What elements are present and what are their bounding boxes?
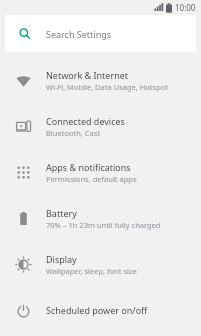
staticText: Apps & notifications bbox=[46, 161, 131, 173]
staticText: Connected devices bbox=[46, 115, 125, 127]
staticText: Display bbox=[46, 253, 77, 265]
button[interactable]: Scheduled power on/off bbox=[0, 287, 201, 333]
button[interactable]: Display bbox=[0, 241, 201, 287]
staticText: Search Settings bbox=[46, 28, 112, 40]
button[interactable]: Battery bbox=[0, 195, 201, 241]
staticText: Bluetooth, Cast bbox=[46, 128, 101, 138]
staticText: Wallpaper, sleep, font size bbox=[46, 266, 137, 276]
button[interactable]: Network & Internet bbox=[0, 57, 201, 103]
button[interactable]: Apps & notifications bbox=[0, 149, 201, 195]
staticText: Wi-Fi, Mobile, Data Usage, Hotspot bbox=[46, 82, 169, 92]
button[interactable]: Connected devices bbox=[0, 103, 201, 149]
staticText: Network & Internet bbox=[46, 69, 129, 81]
button[interactable]: Search Settings bbox=[5, 15, 196, 52]
staticText: Battery bbox=[46, 207, 77, 219]
staticText: Permissions, default apps bbox=[46, 174, 137, 184]
staticText: 10:00 bbox=[175, 2, 196, 13]
staticText: 70% – 1h 23m until fully charged bbox=[46, 220, 161, 230]
staticText: Scheduled power on/off bbox=[46, 304, 148, 316]
